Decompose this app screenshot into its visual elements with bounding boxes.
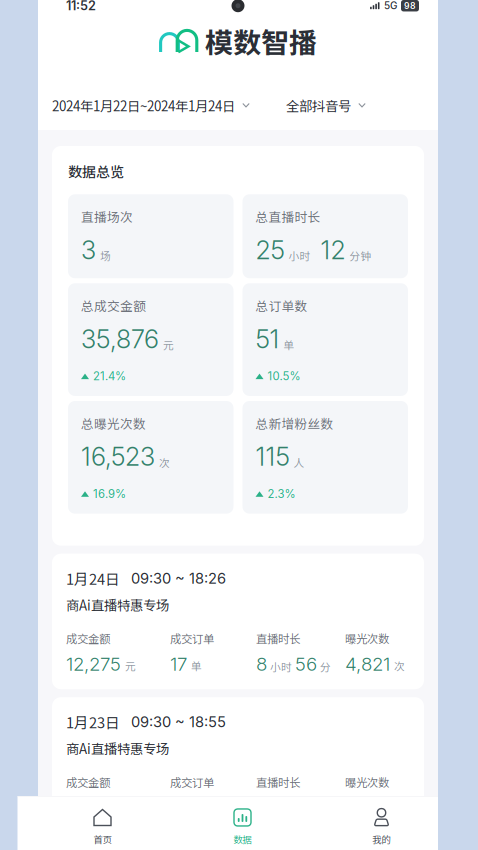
staticText: 21.4% bbox=[93, 369, 126, 383]
staticText: 小时 bbox=[270, 659, 292, 674]
staticText: 3 bbox=[81, 235, 96, 265]
staticText: 总曝光次数 bbox=[81, 414, 146, 432]
staticText: 成交订单 bbox=[170, 630, 214, 647]
staticText: 56 bbox=[295, 653, 317, 675]
staticText: 商Ai直播特惠专场 bbox=[66, 738, 169, 758]
button[interactable]: 全部抖音号 bbox=[286, 86, 366, 125]
staticText: 模数智播 bbox=[205, 21, 317, 61]
staticText: 成交金额 bbox=[66, 630, 110, 647]
staticText: 直播时长 bbox=[256, 630, 300, 647]
staticText: 商Ai直播特惠专场 bbox=[66, 595, 169, 614]
staticText: 16,523 bbox=[81, 441, 155, 472]
staticText: 曝光次数 bbox=[345, 630, 389, 647]
staticText: 35,876 bbox=[81, 324, 159, 354]
staticText: 数据总览 bbox=[68, 161, 124, 181]
staticText: 10.5% bbox=[267, 369, 300, 383]
staticText: 09:30 ~ 18:55 bbox=[131, 713, 226, 731]
button[interactable]: 首页 bbox=[32, 797, 172, 850]
staticText: 4,821 bbox=[345, 653, 390, 675]
staticText: 单 bbox=[191, 658, 202, 673]
staticText: 5G bbox=[384, 0, 397, 12]
staticText: 人 bbox=[293, 454, 304, 470]
staticText: 小时 bbox=[288, 248, 310, 263]
staticText: 全部抖音号 bbox=[286, 96, 351, 115]
staticText: 5,923 bbox=[345, 796, 393, 819]
staticText: 11:52 bbox=[66, 0, 96, 13]
staticText: 8 bbox=[256, 653, 267, 675]
staticText: 单 bbox=[283, 337, 294, 352]
staticText: 1月24日 bbox=[66, 568, 120, 589]
staticText: 成交金额 bbox=[66, 774, 110, 790]
staticText: 12 bbox=[320, 235, 345, 265]
staticText: 12,275 bbox=[66, 653, 121, 675]
staticText: 总成交金额 bbox=[81, 296, 146, 315]
staticText: 98 bbox=[404, 0, 416, 11]
staticText: 51 bbox=[255, 324, 279, 354]
staticText: 直播时长 bbox=[256, 774, 300, 790]
staticText: 成交订单 bbox=[170, 774, 214, 790]
staticText: 元 bbox=[125, 658, 136, 673]
staticText: 1月23日 bbox=[66, 711, 120, 732]
staticText: 115 bbox=[255, 441, 289, 472]
staticText: 元 bbox=[163, 337, 174, 352]
staticText: 场 bbox=[100, 248, 111, 263]
staticText: 次 bbox=[394, 658, 405, 673]
staticText: 总直播时长 bbox=[255, 207, 320, 226]
staticText: 直播场次 bbox=[81, 207, 133, 226]
staticText: 25 bbox=[255, 235, 284, 265]
staticText: 我的 bbox=[372, 832, 390, 846]
staticText: 2024年1月22日~2024年1月24日 bbox=[52, 96, 235, 115]
button[interactable]: 我的 bbox=[312, 797, 450, 850]
staticText: 分钟 bbox=[349, 248, 371, 263]
button[interactable]: 2024年1月22日~2024年1月24日 bbox=[52, 86, 250, 125]
staticText: 总订单数 bbox=[255, 296, 307, 315]
button[interactable]: 1月23日 bbox=[52, 697, 424, 833]
staticText: 13,416 bbox=[66, 796, 118, 819]
staticText: 16.9% bbox=[93, 487, 126, 501]
staticText: 2.3% bbox=[267, 487, 295, 501]
staticText: 曝光次数 bbox=[345, 774, 389, 790]
staticText: 数据 bbox=[233, 832, 251, 846]
staticText: 总新增粉丝数 bbox=[255, 414, 333, 432]
button[interactable]: 数据 bbox=[172, 797, 312, 850]
staticText: 首页 bbox=[93, 832, 111, 846]
staticText: 次 bbox=[159, 454, 170, 470]
staticText: 09:30 ~ 18:26 bbox=[131, 569, 226, 587]
button[interactable]: 1月24日 bbox=[52, 554, 424, 689]
staticText: 分 bbox=[320, 659, 331, 674]
staticText: 17 bbox=[170, 653, 187, 675]
